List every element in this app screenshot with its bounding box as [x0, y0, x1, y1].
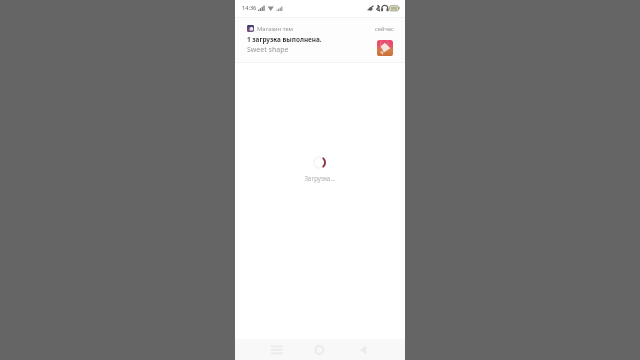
staticText: Магазин тем — [257, 25, 294, 33]
staticText: Sweet shape — [247, 45, 289, 55]
staticText: 1 загрузка выполнена. — [247, 35, 322, 44]
button[interactable]: Recents — [266, 339, 287, 360]
staticText: Загрузка... — [235, 174, 405, 182]
staticText: сейчас — [375, 25, 394, 33]
button[interactable]: Home — [309, 339, 330, 360]
button[interactable]: Магазин тем — [235, 17, 405, 63]
staticText: 14:36 — [242, 4, 257, 12]
